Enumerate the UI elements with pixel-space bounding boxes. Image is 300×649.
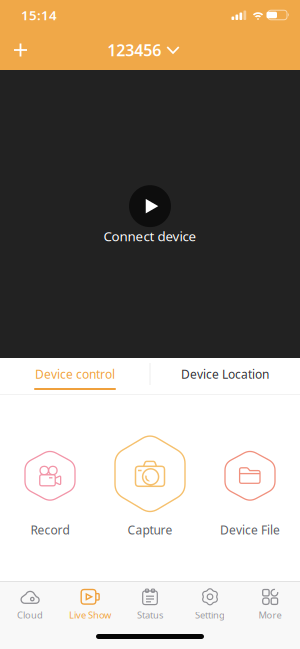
staticText: Connect device [103,227,196,245]
staticText: More [258,609,281,621]
staticText: 123456 [107,39,161,61]
button[interactable]: Capture [100,395,200,581]
staticText: 15:14 [21,6,57,24]
staticText: Status [137,609,163,621]
staticText: Live Show [69,609,111,621]
button[interactable]: Cloud [0,589,60,621]
button[interactable]: Device File [200,395,300,581]
staticText: Record [30,522,69,538]
button[interactable]: Add device [0,30,27,69]
button[interactable]: Device control [0,358,150,394]
staticText: Capture [127,522,172,538]
staticText: Device control [35,366,115,382]
button[interactable]: Device Location [150,358,300,394]
staticText: Device File [220,522,280,538]
staticText: Cloud [17,609,43,621]
button[interactable]: Live Show [60,589,120,621]
button[interactable]: Connect device [103,185,196,245]
button[interactable]: Status [120,589,180,621]
button[interactable]: Setting [180,589,240,621]
staticText: Device Location [181,366,269,382]
staticText: Setting [195,609,225,621]
button[interactable]: Record [0,395,100,581]
button[interactable]: More [240,589,300,621]
button[interactable]: Select device 123456 [114,39,186,61]
